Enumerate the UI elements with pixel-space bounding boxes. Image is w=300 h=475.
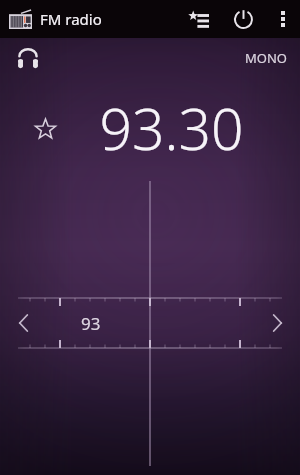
button[interactable]: MONO bbox=[245, 49, 287, 67]
button[interactable]: Add to favorites bbox=[31, 115, 60, 144]
staticText: FM radio bbox=[40, 9, 102, 29]
button[interactable]: Previous station bbox=[8, 308, 38, 338]
button[interactable]: Station list bbox=[176, 0, 221, 38]
button[interactable]: More options bbox=[266, 0, 300, 38]
staticText: 93.30 bbox=[99, 89, 244, 167]
button[interactable]: Headphones bbox=[10, 40, 46, 76]
staticText: 93 bbox=[81, 312, 101, 335]
button[interactable]: Next station bbox=[262, 308, 292, 338]
button[interactable]: Power bbox=[221, 0, 266, 38]
